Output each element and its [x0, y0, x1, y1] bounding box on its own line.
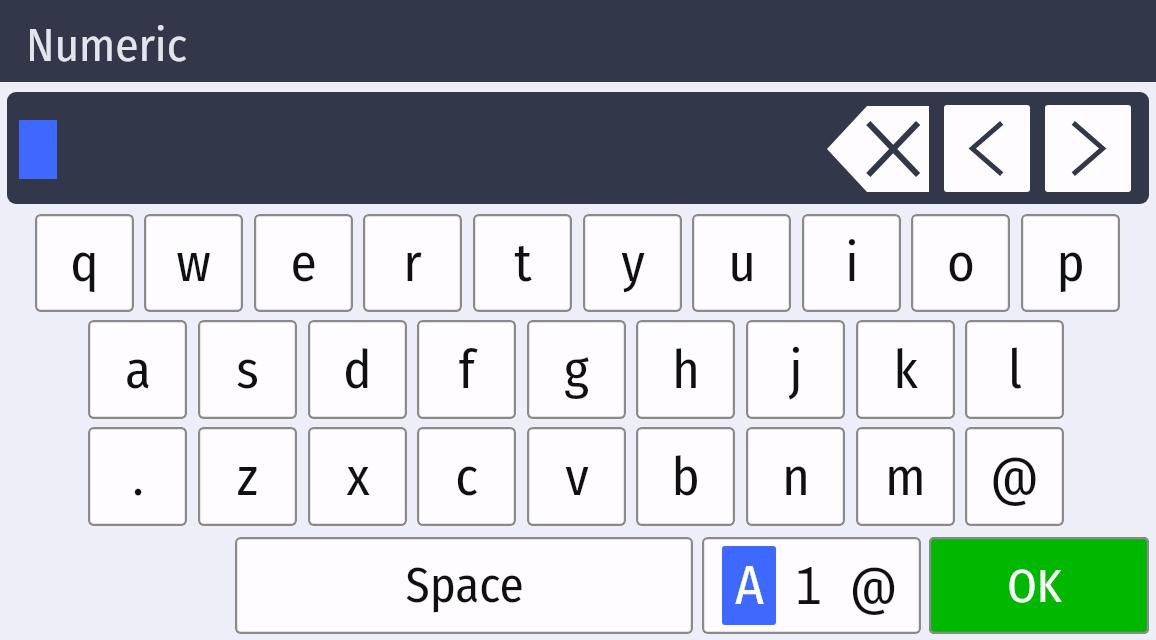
staticText: n [782, 445, 810, 509]
staticText: 1 [796, 549, 821, 620]
button[interactable]: j [746, 320, 845, 419]
staticText: @ [849, 555, 898, 617]
staticText: q [70, 231, 99, 295]
staticText: p [1056, 231, 1085, 295]
button[interactable]: o [911, 214, 1010, 312]
staticText: OK [1007, 558, 1062, 614]
staticText: u [728, 231, 756, 295]
button[interactable]: y [583, 214, 682, 312]
staticText: w [176, 231, 211, 295]
staticText: A [735, 553, 764, 619]
staticText: x [346, 445, 370, 509]
button[interactable]: v [527, 427, 626, 526]
button[interactable]: Move cursor left [944, 105, 1030, 192]
staticText: h [672, 338, 700, 402]
staticText: y [621, 231, 645, 295]
button[interactable]: @ [965, 427, 1064, 526]
staticText: g [564, 338, 589, 402]
staticText: Numeric [26, 17, 187, 73]
button[interactable]: z [198, 427, 297, 526]
button[interactable]: . [88, 427, 187, 526]
button[interactable]: u [692, 214, 791, 312]
button[interactable]: f [417, 320, 516, 419]
staticText: d [343, 338, 372, 402]
button[interactable]: OK [929, 537, 1149, 634]
button[interactable]: w [144, 214, 243, 312]
button[interactable]: c [417, 427, 516, 526]
staticText: o [947, 231, 975, 295]
button[interactable]: d [308, 320, 407, 419]
staticText: j [789, 338, 803, 402]
staticText: a [125, 338, 151, 402]
staticText: f [458, 338, 475, 402]
staticText: m [885, 445, 926, 509]
button[interactable]: Backspace [827, 106, 929, 192]
staticText: z [237, 445, 258, 509]
button[interactable]: p [1021, 214, 1120, 312]
button[interactable]: a [88, 320, 187, 419]
staticText: l [1008, 338, 1022, 402]
button[interactable]: Space [235, 537, 693, 634]
button[interactable]: r [363, 214, 462, 312]
button[interactable]: n [746, 427, 845, 526]
button[interactable]: l [965, 320, 1064, 419]
staticText: . [132, 445, 144, 509]
button[interactable]: A [702, 537, 921, 634]
button[interactable]: m [856, 427, 955, 526]
staticText: s [236, 338, 259, 402]
button[interactable]: Move cursor right [1045, 105, 1131, 192]
staticText: i [845, 231, 859, 295]
button[interactable]: h [636, 320, 735, 419]
button[interactable]: s [198, 320, 297, 419]
button[interactable]: g [527, 320, 626, 419]
staticText: e [290, 231, 317, 295]
button[interactable]: b [636, 427, 735, 526]
button[interactable]: i [802, 214, 901, 312]
staticText: Space [405, 556, 524, 615]
button[interactable]: t [473, 214, 572, 312]
staticText: k [893, 338, 918, 402]
staticText: @ [990, 445, 1039, 509]
staticText: b [671, 445, 700, 509]
staticText: t [514, 231, 532, 295]
staticText: c [455, 445, 478, 509]
staticText: r [403, 231, 422, 295]
button[interactable]: k [856, 320, 955, 419]
button[interactable]: e [254, 214, 353, 312]
button[interactable]: q [35, 214, 134, 312]
button[interactable]: x [308, 427, 407, 526]
staticText: v [565, 445, 589, 509]
